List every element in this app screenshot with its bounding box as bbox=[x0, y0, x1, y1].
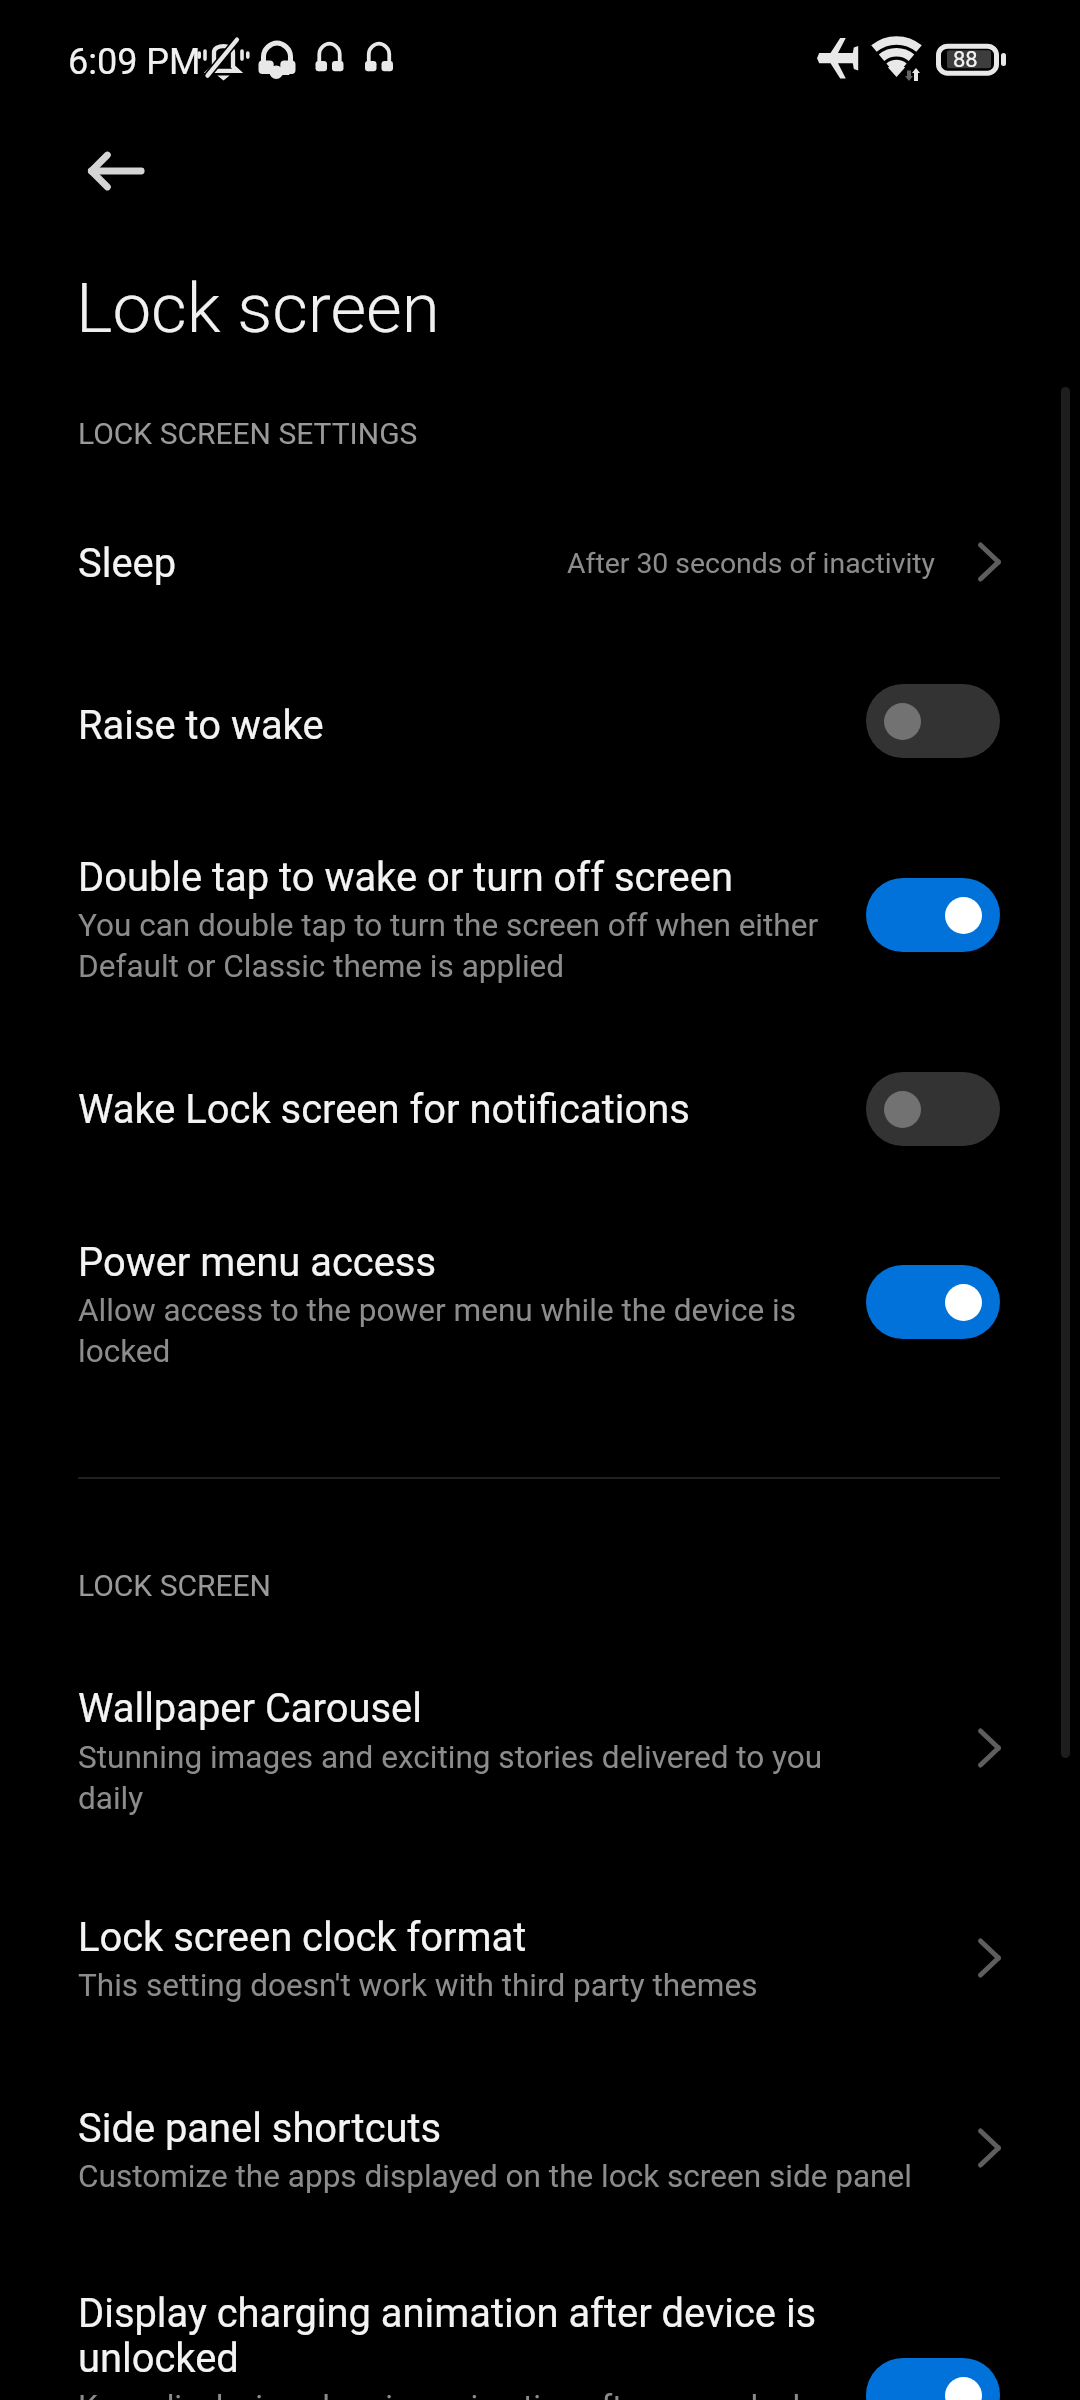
staticText: Power menu access bbox=[78, 1239, 437, 1286]
button[interactable] bbox=[0, 830, 1080, 1000]
staticText: You can double tap to turn the screen of… bbox=[78, 907, 838, 984]
button[interactable]: Off bbox=[866, 684, 1000, 758]
button[interactable]: Open bbox=[948, 522, 1028, 602]
staticText: This setting doesn't work with third par… bbox=[78, 1967, 758, 2004]
button[interactable] bbox=[0, 2280, 1080, 2400]
staticText: Wallpaper Carousel bbox=[78, 1685, 422, 1732]
button[interactable]: Open bbox=[948, 1918, 1028, 1998]
button[interactable]: Off bbox=[866, 1072, 1000, 1146]
staticText: Double tap to wake or turn off screen bbox=[78, 854, 733, 901]
button[interactable] bbox=[0, 2085, 1080, 2225]
button[interactable] bbox=[0, 1895, 1080, 2035]
staticText: After 30 seconds of inactivity bbox=[567, 547, 936, 580]
button[interactable]: On bbox=[866, 1265, 1000, 1339]
staticText: Customize the apps displayed on the lock… bbox=[78, 2158, 912, 2195]
staticText: Display charging animation after device … bbox=[78, 2290, 858, 2381]
staticText: 6:09 PM bbox=[68, 41, 201, 83]
button[interactable]: Open bbox=[948, 2108, 1028, 2188]
button[interactable]: Back bbox=[64, 119, 168, 223]
staticText: Keep displaying charging animation after… bbox=[78, 2388, 858, 2400]
staticText: LOCK SCREEN bbox=[78, 1568, 271, 1603]
button[interactable] bbox=[0, 1216, 1080, 1386]
staticText: Lock screen bbox=[76, 268, 440, 349]
button[interactable] bbox=[0, 1660, 1080, 1840]
staticText: Allow access to the power menu while the… bbox=[78, 1292, 818, 1369]
button[interactable]: On bbox=[866, 878, 1000, 952]
staticText: Wake Lock screen for notifications bbox=[78, 1086, 690, 1133]
button[interactable] bbox=[0, 660, 1080, 780]
staticText: Sleep bbox=[78, 540, 177, 587]
button[interactable]: On bbox=[866, 2358, 1000, 2400]
staticText: 88 bbox=[953, 47, 978, 73]
staticText: Stunning images and exciting stories del… bbox=[78, 1739, 858, 1816]
button[interactable]: Open bbox=[948, 1708, 1028, 1788]
staticText: Raise to wake bbox=[78, 702, 324, 749]
button[interactable] bbox=[0, 1048, 1080, 1168]
button[interactable] bbox=[0, 500, 1080, 630]
staticText: Lock screen clock format bbox=[78, 1914, 527, 1961]
staticText: Side panel shortcuts bbox=[78, 2105, 442, 2152]
staticText: LOCK SCREEN SETTINGS bbox=[78, 416, 418, 451]
